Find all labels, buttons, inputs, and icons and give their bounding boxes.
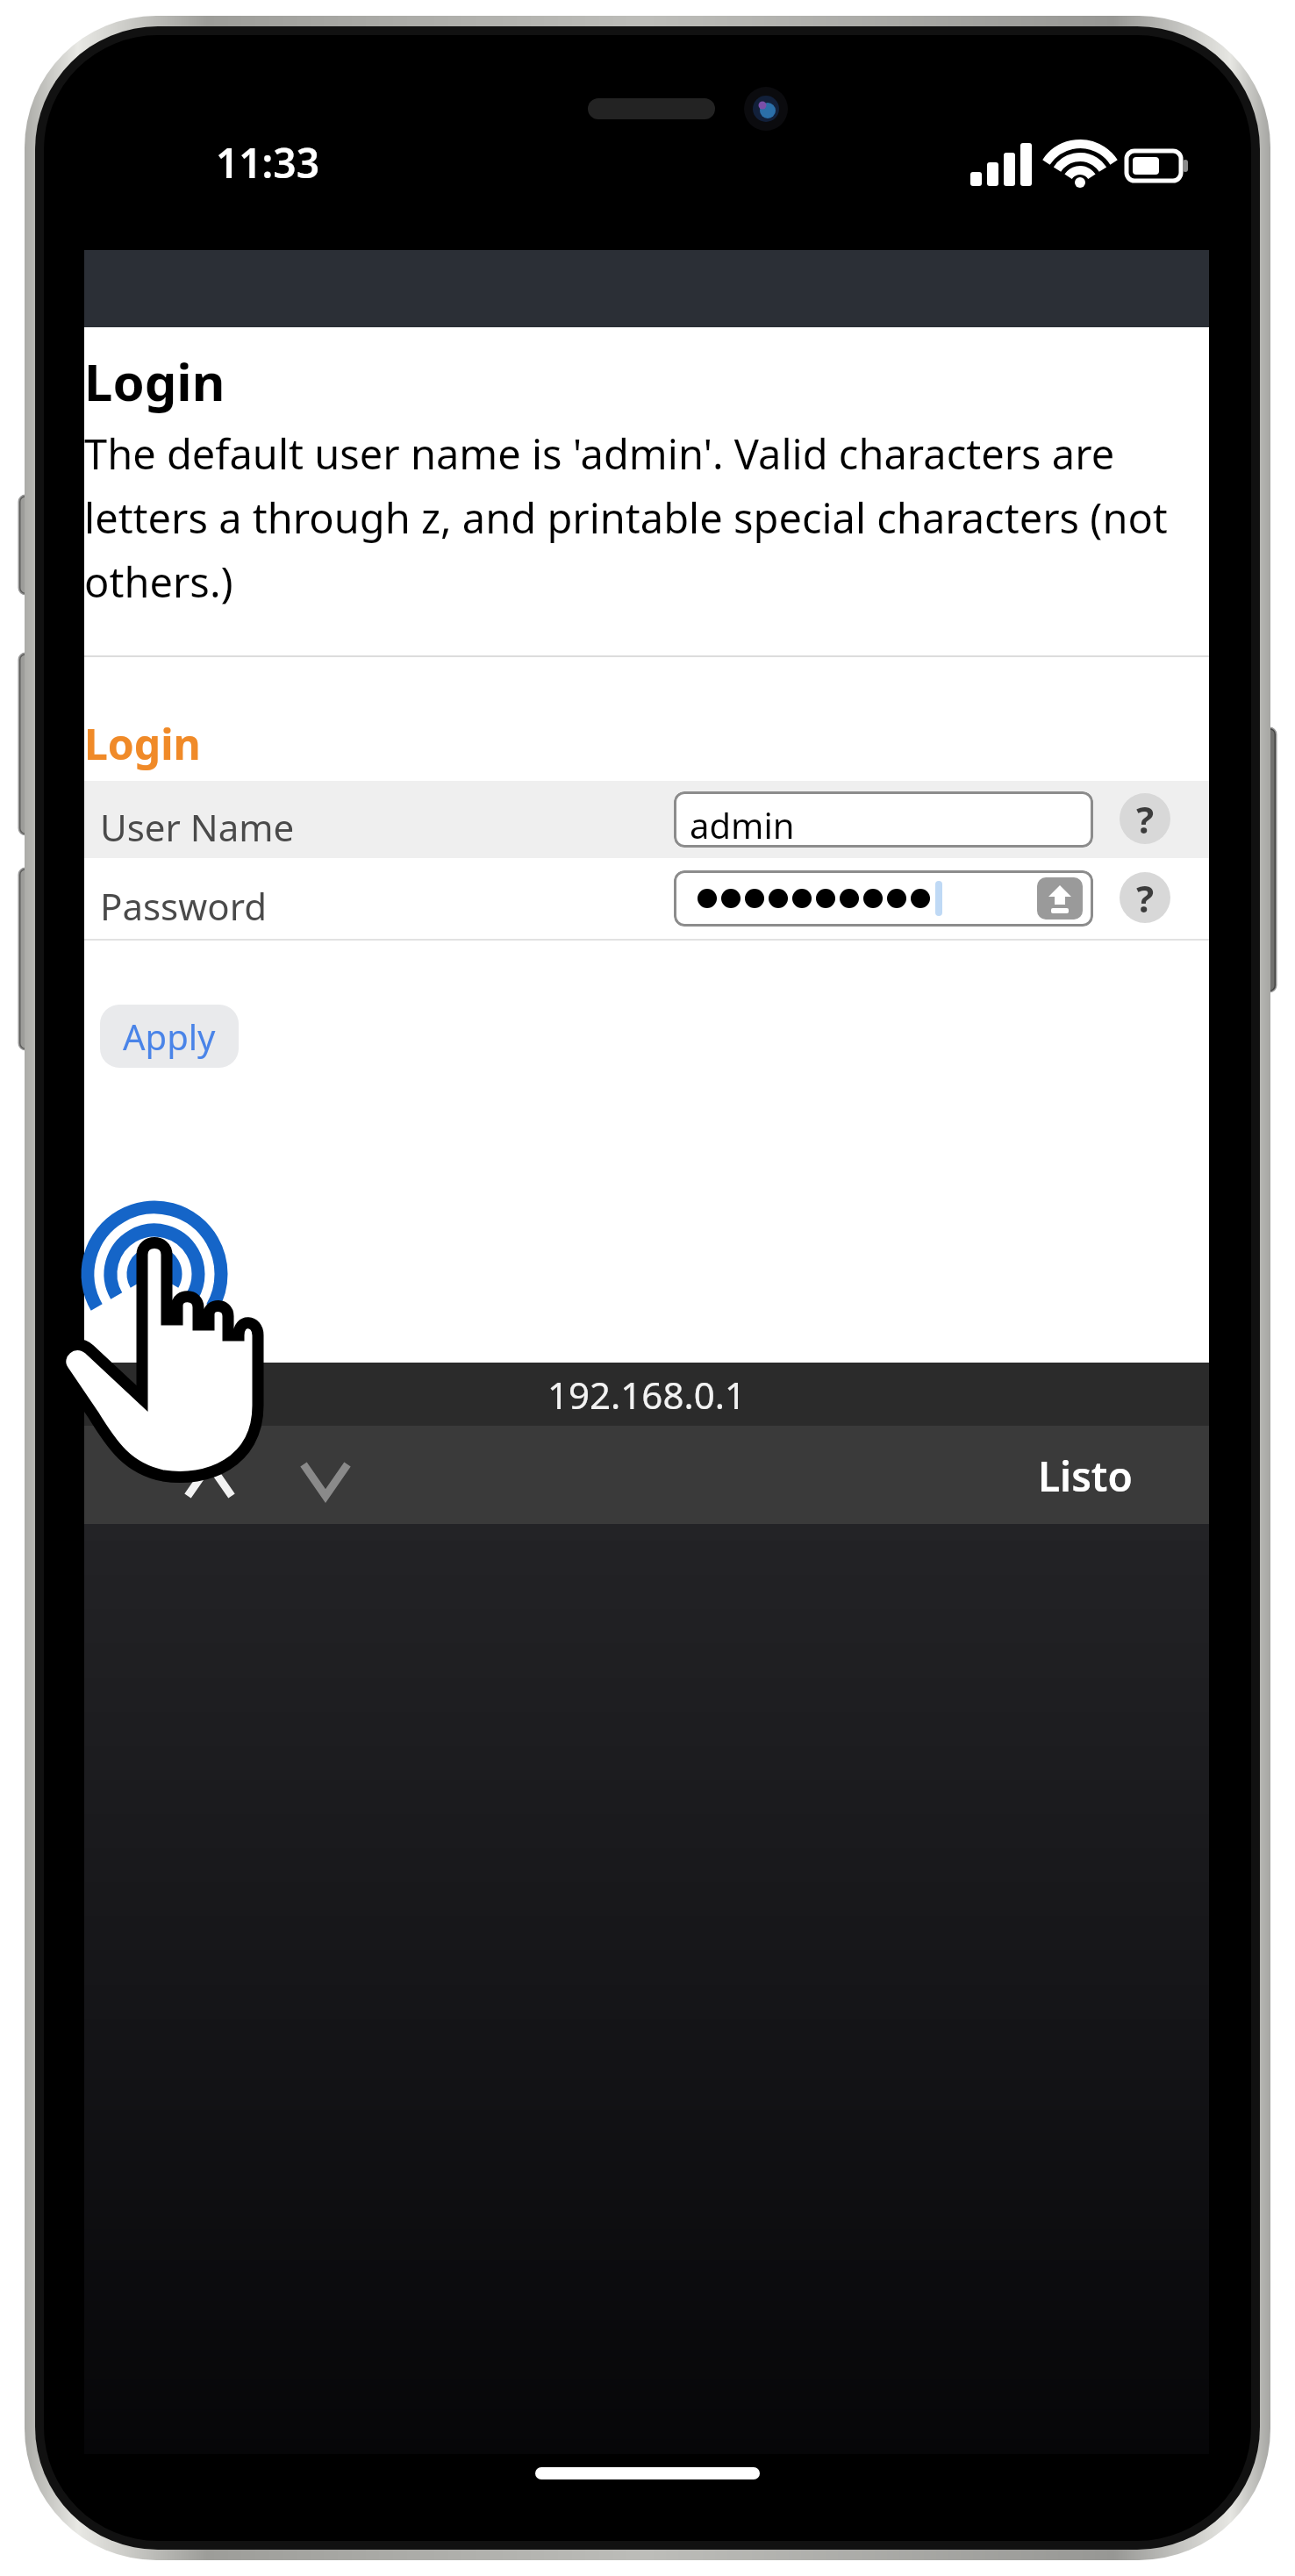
button[interactable]: Previous field [172,1442,247,1517]
button[interactable]: Password [84,860,1209,937]
staticText: Apply [123,1013,216,1060]
button[interactable]: 192.168.0.1 [84,1363,1209,1426]
button[interactable]: User Name [84,781,1209,858]
button[interactable]: admin [674,791,1093,848]
staticText: 192.168.0.1 [547,1370,746,1420]
staticText: ? [1136,794,1155,844]
staticText: Login [84,347,225,416]
staticText: User Name [100,802,295,852]
button[interactable]: Apply [100,1005,239,1068]
staticText: Listo [1038,1449,1133,1504]
staticText: The default user name is 'admin'. Valid … [84,426,1209,610]
button[interactable]: Help [1120,872,1170,923]
staticText: admin [690,801,795,848]
staticText: Login [84,715,201,772]
button[interactable]: Next field [288,1442,363,1517]
button[interactable] [674,870,1093,927]
button[interactable]: Help [1120,793,1170,844]
staticText: 11:33 [216,135,319,190]
staticText: ? [1136,873,1155,923]
button[interactable]: Listo [1027,1443,1143,1509]
staticText: Password [100,881,267,931]
